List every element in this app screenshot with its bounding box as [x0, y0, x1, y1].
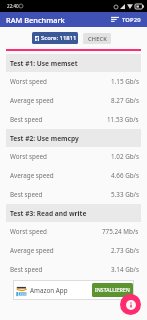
staticText: Average speed: [10, 246, 54, 255]
staticText: 2.73 Gb/s: [111, 246, 139, 255]
staticText: Average speed: [10, 96, 54, 105]
staticText: Best speed: [10, 265, 43, 274]
button[interactable]: INSTALLIEREN: [92, 283, 133, 297]
staticText: 22:40: [7, 3, 19, 9]
button[interactable]: Worst speed: [0, 222, 147, 241]
button[interactable]: Worst speed: [0, 147, 147, 166]
staticText: TOP20: [122, 16, 141, 24]
staticText: Worst speed: [10, 152, 47, 161]
button[interactable]: Best speed: [0, 110, 147, 129]
staticText: Test #1: Use memset: [10, 59, 78, 68]
button[interactable]: Info: [120, 294, 141, 315]
staticText: INSTALLIEREN: [95, 287, 130, 294]
staticText: Worst speed: [10, 227, 47, 236]
staticText: Worst speed: [10, 77, 47, 86]
button[interactable]: Score: 11811: [32, 32, 78, 44]
button[interactable]: Amazon App: [13, 280, 134, 300]
staticText: Test #3: Read and write: [10, 209, 87, 218]
staticText: 1.15 Gb/s: [111, 77, 139, 86]
staticText: Best speed: [10, 190, 43, 199]
staticText: CHECK: [88, 35, 107, 43]
button[interactable]: Average speed: [0, 241, 147, 260]
staticText: Best speed: [10, 115, 43, 124]
staticText: 4.66 Gb/s: [111, 171, 139, 180]
button[interactable]: TOP20: [107, 12, 147, 27]
staticText: RAM Benchmark: [6, 15, 65, 25]
button[interactable]: Average speed: [0, 166, 147, 185]
button[interactable]: CHECK: [83, 33, 111, 44]
staticText: 11.53 Gb/s: [107, 115, 139, 124]
button[interactable]: Average speed: [0, 91, 147, 110]
staticText: 3.14 Gb/s: [111, 265, 139, 274]
staticText: 1.02 Gb/s: [111, 152, 139, 161]
button[interactable]: Best speed: [0, 260, 147, 279]
staticText: Amazon App: [30, 286, 68, 295]
staticText: Test #2: Use memcpy: [10, 134, 79, 143]
button[interactable]: Worst speed: [0, 72, 147, 91]
staticText: 775.24 Mb/s: [102, 227, 139, 236]
staticText: Average speed: [10, 171, 54, 180]
staticText: 8.27 Gb/s: [111, 96, 139, 105]
button[interactable]: Best speed: [0, 185, 147, 204]
staticText: 5.33 Gb/s: [111, 190, 139, 199]
staticText: Score: 11811: [41, 34, 76, 42]
